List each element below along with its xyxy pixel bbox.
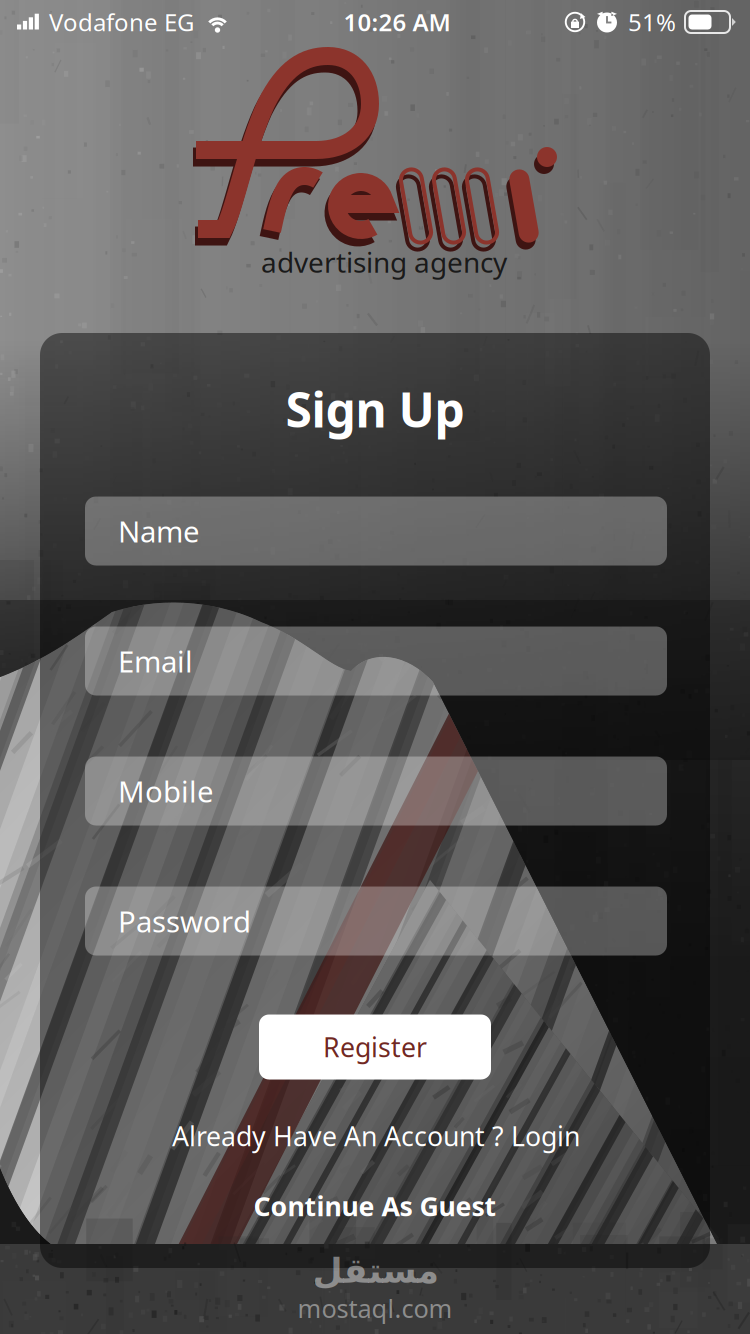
staticText: Mobile [118, 771, 214, 810]
staticText: mostaql.com [297, 1291, 452, 1325]
button[interactable]: Continue As Guest [240, 1186, 510, 1226]
button[interactable]: Password [85, 886, 667, 955]
staticText: advertising agency [261, 243, 507, 281]
button[interactable]: Register [259, 1014, 491, 1079]
staticText: Name [118, 511, 200, 550]
staticText: 51% [628, 6, 676, 38]
button[interactable]: Already Have An Account ? Login [161, 1114, 591, 1158]
staticText: Vodafone EG [49, 6, 194, 38]
staticText: Register [323, 1029, 427, 1065]
staticText: Email [118, 641, 193, 680]
staticText: مستقل [312, 1251, 438, 1290]
staticText: Sign Up [285, 377, 464, 441]
staticText: Password [118, 901, 251, 940]
staticText: Already Have An Account ? Login [172, 1118, 580, 1154]
button[interactable]: Name [85, 496, 667, 565]
button[interactable]: Mobile [85, 756, 667, 825]
button[interactable]: Email [85, 626, 667, 695]
staticText: 10:26 AM [343, 6, 450, 38]
staticText: Continue As Guest [253, 1188, 496, 1224]
